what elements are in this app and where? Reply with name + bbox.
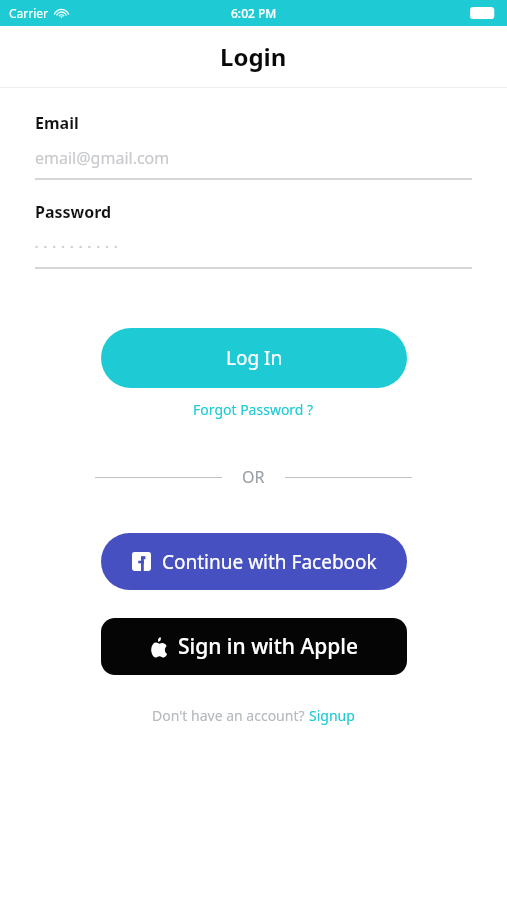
button[interactable]: Sign in with Apple	[101, 618, 407, 675]
staticText: Continue with Facebook	[162, 549, 377, 575]
staticText: Forgot Password ?	[193, 400, 314, 419]
staticText: Carrier	[9, 5, 49, 21]
staticText: Sign in with Apple	[178, 632, 358, 661]
staticText: Login	[220, 40, 287, 73]
button[interactable]: Signup	[309, 706, 355, 725]
button[interactable]: Email	[35, 112, 472, 180]
button[interactable]: Forgot Password ?	[187, 397, 320, 422]
staticText: Log In	[226, 345, 283, 371]
staticText: OR	[242, 466, 265, 488]
button[interactable]: Log In	[101, 328, 407, 388]
staticText: email@gmail.com	[35, 147, 170, 169]
button[interactable]: Continue with Facebook	[101, 533, 407, 590]
staticText: Signup	[309, 706, 355, 725]
staticText: Password	[35, 201, 112, 223]
staticText: Email	[35, 112, 79, 134]
staticText: Don't have an account?	[152, 706, 309, 725]
staticText: 6:02 PM	[231, 5, 277, 21]
button[interactable]: Password	[35, 201, 472, 269]
